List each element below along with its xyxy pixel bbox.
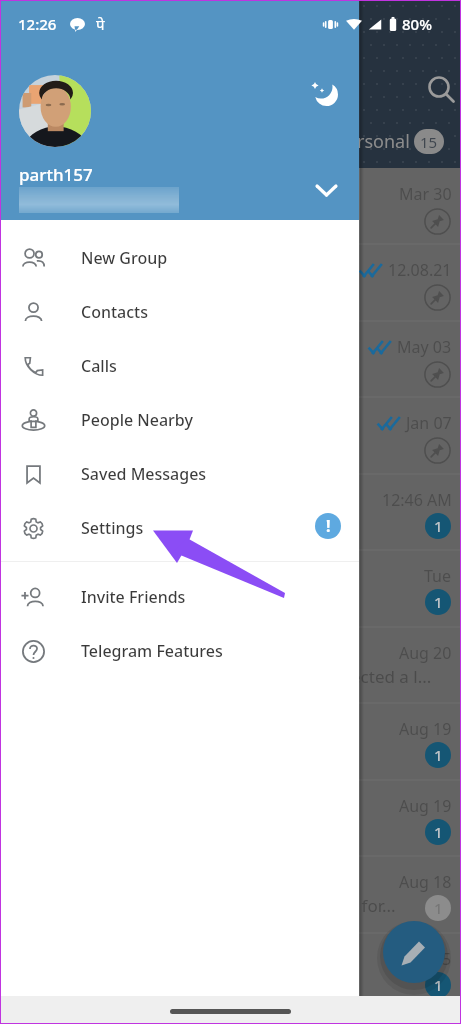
button[interactable]: Contacts (1, 285, 359, 339)
staticText: पे (96, 14, 105, 34)
button[interactable]: Saved Messages (1, 447, 359, 501)
staticText: 1 (434, 822, 443, 842)
staticText: 12:46 AM (382, 489, 452, 511)
button[interactable]: Settings (1, 501, 359, 555)
staticText: ! (326, 515, 331, 537)
staticText: 5 (442, 948, 452, 970)
staticText: May 03 (397, 336, 452, 358)
staticText: Settings (81, 517, 144, 539)
staticText: New Group (81, 247, 168, 269)
staticText: Aug 19 (399, 718, 452, 740)
staticText: 12:26 (18, 14, 57, 34)
staticText: 15 (420, 132, 438, 152)
staticText: 1 (434, 745, 443, 765)
staticText: Aug 18 (399, 871, 452, 893)
staticText: Aug 19 (399, 795, 452, 817)
staticText: t for... (351, 894, 396, 917)
staticText: People Nearby (81, 409, 193, 431)
button[interactable]: Expand account list (311, 174, 342, 205)
button[interactable]: New Group (1, 231, 359, 285)
staticText: 12.08.21 (388, 259, 452, 281)
staticText: rsonal (357, 129, 410, 154)
button[interactable]: Night mode (305, 75, 343, 113)
staticText: Contacts (81, 301, 149, 323)
staticText: 1 (434, 975, 443, 995)
staticText: Invite Friends (81, 586, 186, 608)
staticText: ected a l... (351, 665, 432, 688)
button[interactable]: Telegram Features (1, 624, 359, 678)
staticText: 1 (434, 898, 443, 918)
button[interactable]: Invite Friends (1, 570, 359, 624)
button[interactable]: People Nearby (1, 393, 359, 447)
staticText: Aug 20 (399, 642, 452, 664)
staticText: Mar 30 (399, 183, 452, 205)
staticText: 1 (434, 516, 443, 536)
staticText: parth157 (19, 163, 93, 186)
button[interactable]: Calls (1, 339, 359, 393)
button[interactable]: New message (383, 921, 445, 983)
staticText: Tue (424, 565, 452, 587)
staticText: 80% (402, 14, 432, 34)
staticText: Calls (81, 355, 117, 377)
staticText: Saved Messages (81, 463, 207, 485)
staticText: Telegram Features (81, 640, 223, 662)
staticText: Jan 07 (406, 412, 452, 434)
staticText: 1 (434, 592, 443, 612)
